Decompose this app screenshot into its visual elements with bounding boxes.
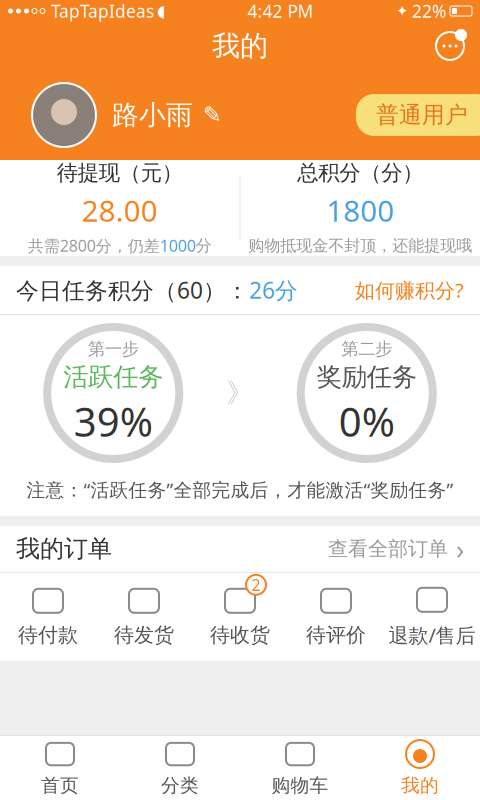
staticText: 待提现（元） (57, 160, 183, 186)
button[interactable]: 第二步 (301, 327, 433, 459)
staticText: 奖励任务 (317, 361, 417, 393)
staticText: 退款/售后 (388, 622, 475, 648)
staticText: 22% (412, 0, 446, 22)
staticText: › (456, 531, 464, 566)
staticText: 分 (196, 236, 212, 255)
staticText: 首页 (41, 774, 79, 797)
staticText: 待付款 (18, 623, 78, 647)
staticText: 26分 (249, 275, 298, 305)
staticText: 购物车 (271, 774, 328, 797)
button[interactable]: 如何赚积分? (355, 271, 464, 309)
button[interactable]: 普通用户 (356, 94, 480, 136)
button[interactable]: 分类 (120, 733, 240, 800)
button[interactable]: 第一步 (47, 327, 179, 459)
staticText: 总积分（分） (297, 160, 423, 186)
staticText: 4:42 PM (247, 0, 313, 22)
staticText: 购物抵现金不封顶，还能提现哦 (248, 236, 472, 255)
staticText: 普通用户 (376, 101, 468, 129)
staticText: 活跃任务 (63, 361, 163, 393)
staticText: 查看全部订单 (328, 536, 448, 561)
staticText: 我的 (212, 29, 268, 63)
staticText: 1000 (160, 235, 196, 256)
staticText: TapTapIdeas (51, 0, 154, 22)
button[interactable]: 待评价 (288, 578, 384, 655)
staticText: 0% (339, 395, 395, 448)
staticText: 待收货 (210, 623, 270, 647)
staticText: 1800 (326, 191, 394, 230)
staticText: 我的 (401, 774, 439, 797)
staticText: 路小雨 (112, 99, 193, 131)
staticText: 39% (74, 395, 153, 448)
button[interactable]: 查看全部订单 (328, 525, 464, 572)
staticText: 28.00 (82, 191, 158, 230)
button[interactable]: 首页 (0, 733, 120, 800)
staticText: 今日任务积分（60）： (16, 275, 249, 305)
button[interactable]: 2 (192, 578, 288, 655)
button[interactable]: 待付款 (0, 578, 96, 655)
staticText: 》 (226, 377, 253, 409)
staticText: ✎ (203, 102, 222, 128)
button[interactable]: 待发货 (96, 578, 192, 655)
staticText: 第一步 (88, 338, 139, 359)
staticText: 我的订单 (16, 534, 112, 564)
button[interactable]: 总积分（分） (240, 148, 480, 268)
staticText: 共需2800分，仍差 (28, 235, 160, 256)
staticText: 第二步 (341, 338, 392, 359)
button[interactable]: 路小雨 (96, 91, 222, 139)
button[interactable]: 我的 (360, 733, 480, 800)
staticText: 分类 (161, 774, 199, 797)
staticText: ✦ (396, 3, 408, 19)
staticText: 注意：“活跃任务”全部完成后，才能激活“奖励任务” (26, 477, 453, 502)
button[interactable]: 待提现（元） (0, 148, 239, 268)
button[interactable]: 退款/售后 (384, 577, 480, 656)
staticText: 如何赚积分? (355, 277, 464, 303)
staticText: 待发货 (114, 623, 174, 647)
button[interactable]: Messages (428, 24, 472, 68)
staticText: 待评价 (306, 623, 366, 647)
staticText: ◖ (157, 2, 165, 20)
staticText: 2 (251, 574, 260, 595)
button[interactable]: 购物车 (240, 733, 360, 800)
